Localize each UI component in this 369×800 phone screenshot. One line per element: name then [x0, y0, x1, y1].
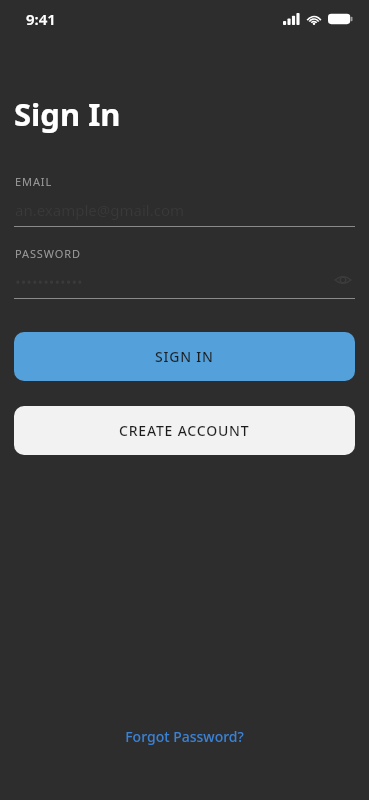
staticText: PASSWORD	[15, 246, 81, 261]
staticText: SIGN IN	[155, 347, 214, 366]
button[interactable]: Show password	[331, 268, 355, 292]
staticText: EMAIL	[15, 174, 53, 189]
staticText: Forgot Password?	[125, 727, 244, 746]
button[interactable]: CREATE ACCOUNT	[14, 406, 355, 455]
staticText: an.example@gmail.com	[15, 200, 185, 220]
staticText: 9:41	[26, 9, 56, 29]
staticText: Sign In	[14, 93, 121, 135]
button[interactable]: SIGN IN	[14, 332, 355, 381]
button[interactable]: Forgot Password?	[117, 723, 252, 750]
staticText: CREATE ACCOUNT	[119, 421, 250, 440]
